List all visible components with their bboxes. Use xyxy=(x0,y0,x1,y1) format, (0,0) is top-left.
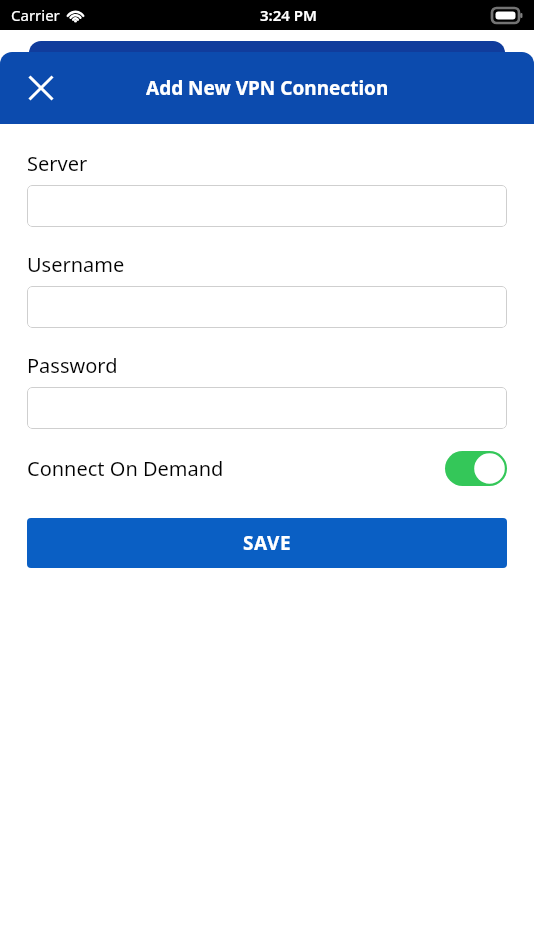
staticText: 3:24 PM xyxy=(260,5,317,25)
staticText: Carrier xyxy=(11,5,60,25)
button[interactable]: Server xyxy=(27,185,507,227)
staticText: Server xyxy=(27,150,88,177)
staticText: Add New VPN Connection xyxy=(146,75,389,101)
staticText: SAVE xyxy=(243,530,292,556)
button[interactable]: Username xyxy=(27,286,507,328)
staticText: Username xyxy=(27,251,125,278)
button[interactable]: Connect On Demand xyxy=(27,447,507,489)
button[interactable]: Password xyxy=(27,387,507,429)
staticText: Connect On Demand xyxy=(27,455,224,482)
button[interactable]: SAVE xyxy=(27,518,507,568)
staticText: Password xyxy=(27,352,118,379)
button[interactable]: Close xyxy=(18,65,64,111)
button[interactable]: Connect On Demand toggle xyxy=(445,451,507,486)
